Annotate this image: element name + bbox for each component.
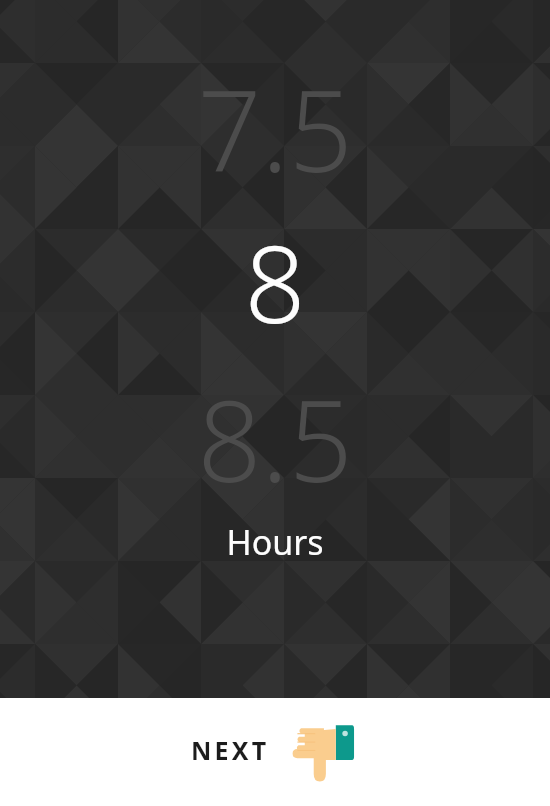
other: Next (291, 721, 355, 783)
staticText: Hours (0, 519, 550, 565)
staticText: NEXT (191, 733, 270, 767)
button[interactable]: NEXT (191, 716, 359, 784)
button[interactable]: 7.5 (0, 52, 550, 205)
button[interactable]: 8 (0, 210, 550, 354)
button[interactable]: 8.5 (0, 362, 550, 515)
